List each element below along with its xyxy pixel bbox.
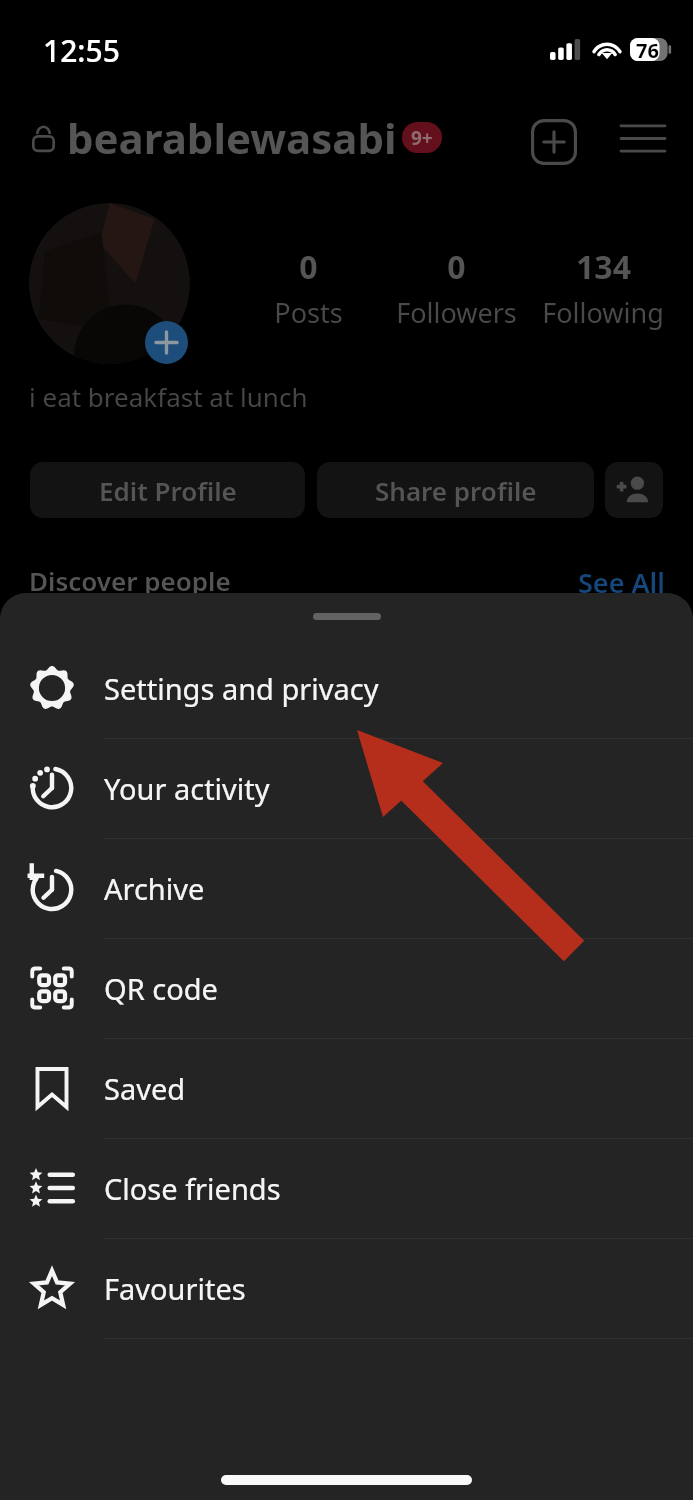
- staticText: 9+: [411, 125, 433, 151]
- button[interactable]: QR code: [0, 938, 693, 1038]
- staticText: bearablewasabi: [67, 109, 397, 166]
- button[interactable]: Archive: [0, 838, 693, 938]
- button[interactable]: Settings and privacy: [0, 638, 693, 738]
- staticText: 0: [447, 245, 466, 289]
- button[interactable]: Saved: [0, 1038, 693, 1138]
- button[interactable]: Share profile: [317, 462, 594, 518]
- button[interactable]: 0: [218, 245, 398, 331]
- staticText: 0: [299, 245, 318, 289]
- staticText: Saved: [104, 1069, 186, 1108]
- staticText: 134: [576, 245, 631, 289]
- button[interactable]: 134: [513, 245, 693, 331]
- button[interactable]: See All: [578, 564, 665, 601]
- button[interactable]: New post: [528, 116, 580, 168]
- staticText: 12:55: [43, 30, 120, 71]
- staticText: Following: [542, 294, 664, 331]
- button[interactable]: Add to story: [145, 321, 188, 364]
- staticText: Followers: [396, 294, 517, 331]
- button[interactable]: Menu: [617, 112, 669, 164]
- staticText: Discover people: [29, 563, 231, 598]
- staticText: QR code: [104, 969, 218, 1008]
- staticText: Your activity: [104, 769, 270, 808]
- button[interactable]: Close friends: [0, 1138, 693, 1238]
- button[interactable]: Your activity: [0, 738, 693, 838]
- button[interactable]: Edit Profile: [30, 462, 305, 518]
- staticText: Archive: [104, 869, 205, 908]
- staticText: Share profile: [375, 473, 537, 508]
- button[interactable]: Discover people: [605, 462, 663, 518]
- staticText: Settings and privacy: [104, 669, 379, 708]
- button[interactable]: 0: [366, 245, 546, 331]
- staticText: 76: [636, 37, 659, 60]
- staticText: Posts: [274, 294, 343, 331]
- button[interactable]: Favourites: [0, 1238, 693, 1338]
- staticText: Close friends: [104, 1169, 281, 1208]
- staticText: See All: [578, 564, 665, 601]
- button[interactable]: Profile picture: [29, 203, 190, 364]
- staticText: i eat breakfast at lunch: [29, 379, 308, 414]
- staticText: Favourites: [104, 1269, 246, 1308]
- staticText: Edit Profile: [99, 473, 237, 508]
